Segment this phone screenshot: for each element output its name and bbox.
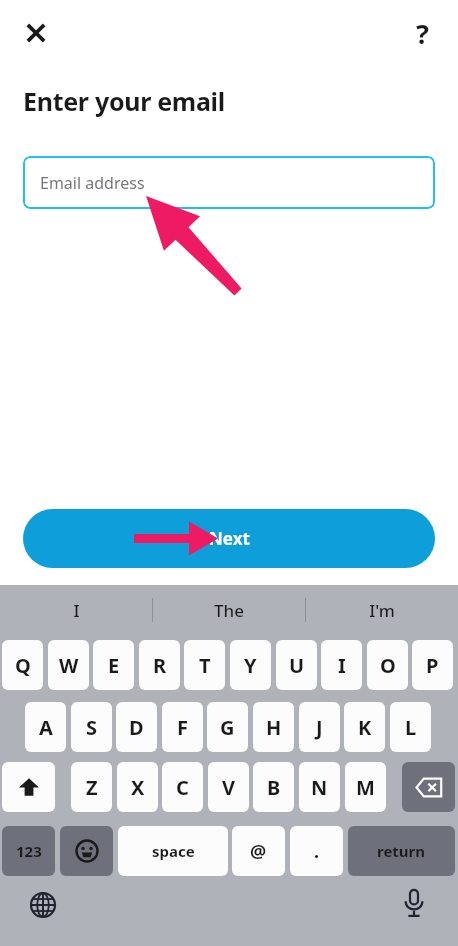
button[interactable]: V <box>208 762 249 812</box>
staticText: O <box>380 652 396 679</box>
staticText: . <box>314 839 320 864</box>
button[interactable]: Q <box>2 640 43 690</box>
button[interactable]: A <box>25 702 66 752</box>
button[interactable]: I <box>0 585 152 635</box>
button[interactable]: G <box>207 702 248 752</box>
button[interactable]: R <box>139 640 180 690</box>
staticText: X <box>131 774 145 801</box>
button[interactable]: E <box>93 640 134 690</box>
button[interactable]: Close <box>14 11 58 55</box>
staticText: P <box>426 652 439 679</box>
button[interactable]: Shift <box>2 762 55 812</box>
button[interactable]: M <box>345 762 386 812</box>
button[interactable]: X <box>117 762 158 812</box>
button[interactable]: @ <box>232 826 285 876</box>
button[interactable]: return <box>348 826 455 876</box>
button[interactable]: space <box>118 826 228 876</box>
staticText: I'm <box>369 599 395 622</box>
button[interactable]: Z <box>71 762 112 812</box>
staticText: K <box>358 714 372 741</box>
button[interactable]: W <box>48 640 89 690</box>
staticText: 123 <box>16 841 42 861</box>
staticText: G <box>220 714 235 741</box>
staticText: @ <box>250 839 267 864</box>
button[interactable]: O <box>367 640 408 690</box>
staticText: B <box>267 774 281 801</box>
staticText: return <box>377 841 426 861</box>
staticText: U <box>289 652 305 679</box>
button[interactable]: C <box>162 762 203 812</box>
button[interactable]: I <box>321 640 362 690</box>
staticText: I <box>73 599 80 622</box>
button[interactable]: Voice input <box>392 881 436 925</box>
staticText: Q <box>15 652 31 679</box>
button[interactable]: I'm <box>306 585 458 635</box>
staticText: R <box>153 652 167 679</box>
staticText: Z <box>86 774 98 801</box>
button[interactable]: B <box>253 762 294 812</box>
staticText: E <box>108 652 120 679</box>
button[interactable]: Y <box>230 640 271 690</box>
staticText: I <box>338 652 346 679</box>
staticText: H <box>266 714 282 741</box>
button[interactable]: J <box>299 702 340 752</box>
staticText: T <box>199 652 211 679</box>
button[interactable]: Backspace <box>402 762 455 812</box>
button[interactable]: Next <box>23 509 435 568</box>
staticText: L <box>405 714 417 741</box>
staticText: S <box>86 714 98 741</box>
button[interactable]: K <box>344 702 385 752</box>
staticText: Y <box>244 652 257 679</box>
button[interactable]: Emoji <box>60 826 113 876</box>
button[interactable]: 123 <box>2 826 55 876</box>
staticText: D <box>129 714 144 741</box>
staticText: V <box>222 774 235 801</box>
staticText: F <box>177 714 188 741</box>
button[interactable]: F <box>162 702 203 752</box>
staticText: The <box>214 599 244 622</box>
staticText: Next <box>209 527 250 550</box>
button[interactable]: . <box>290 826 343 876</box>
staticText: A <box>39 714 53 741</box>
staticText: W <box>59 652 79 679</box>
button[interactable]: N <box>299 762 340 812</box>
staticText: ? <box>416 15 429 52</box>
button[interactable]: Change keyboard <box>21 883 65 927</box>
button[interactable]: U <box>276 640 317 690</box>
staticText: space <box>152 841 195 861</box>
button[interactable]: P <box>412 640 453 690</box>
button[interactable]: Email address <box>23 156 435 209</box>
staticText: Enter your email <box>23 84 225 118</box>
button[interactable]: L <box>390 702 431 752</box>
staticText: M <box>356 774 375 801</box>
button[interactable]: T <box>184 640 225 690</box>
button[interactable]: H <box>253 702 294 752</box>
staticText: C <box>176 774 189 801</box>
button[interactable]: The <box>153 585 305 635</box>
staticText: N <box>311 774 328 801</box>
button[interactable]: D <box>116 702 157 752</box>
staticText: Email address <box>40 172 145 194</box>
staticText: J <box>316 714 323 741</box>
button[interactable]: Help <box>400 11 444 55</box>
button[interactable]: S <box>71 702 112 752</box>
